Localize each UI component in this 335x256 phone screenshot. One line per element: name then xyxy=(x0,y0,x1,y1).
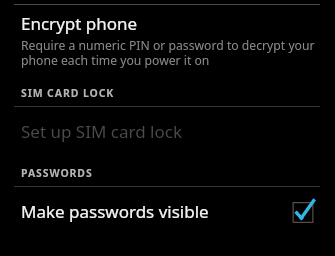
staticText: Encrypt phone xyxy=(21,12,138,35)
other: Make passwords visible checkbox, checked xyxy=(288,197,318,227)
staticText: Require a numeric PIN or password to dec… xyxy=(21,37,317,68)
button[interactable]: Encrypt phone xyxy=(0,5,335,74)
staticText: PASSWORDS xyxy=(21,166,93,180)
staticText: Set up SIM card lock xyxy=(21,120,182,143)
button[interactable]: Set up SIM card lock xyxy=(0,107,335,155)
staticText: Make passwords visible xyxy=(21,200,209,223)
staticText: SIM CARD LOCK xyxy=(21,86,115,100)
button[interactable]: Make passwords visible xyxy=(0,187,335,235)
